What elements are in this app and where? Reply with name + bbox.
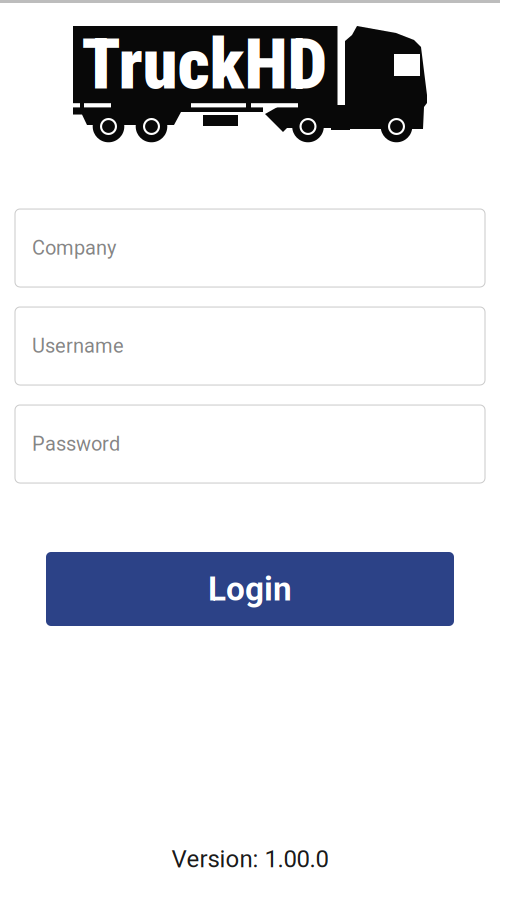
staticText: Version: 1.00.0 [171, 845, 328, 873]
button[interactable]: Password [15, 405, 485, 483]
button[interactable]: Login [46, 552, 454, 626]
staticText: Company [32, 236, 116, 260]
staticText: Username [32, 334, 124, 358]
button[interactable]: Company [15, 209, 485, 287]
staticText: TruckHD [81, 23, 327, 106]
staticText: Login [208, 569, 292, 609]
staticText: Password [32, 432, 120, 456]
button[interactable]: Username [15, 307, 485, 385]
